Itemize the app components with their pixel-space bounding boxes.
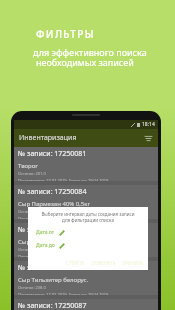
staticText: Произведено: 17.02.2019 Годен до: 29.04.… (18, 292, 109, 295)
staticText: Остаток: 35.0 (18, 209, 44, 214)
staticText: для эффективного поиска (33, 46, 147, 58)
staticText: Сыр Тильзитер белорус. (18, 276, 89, 284)
staticText: № записи: 17250087 (18, 301, 87, 310)
button[interactable]: № записи: 17250081 (14, 147, 158, 185)
staticText: ПРИНЯТЬ (122, 260, 143, 266)
staticText: 18:14 (142, 121, 155, 128)
staticText: № записи: 17250081 (18, 149, 87, 159)
button[interactable]: СТЕРЕТЬ (65, 259, 86, 267)
staticText: Сыр Пармезан 40% 0,5кг (18, 200, 91, 208)
staticText: Дата до (36, 242, 55, 249)
staticText: Выберите интервал даты создания записи д… (34, 211, 142, 223)
button[interactable]: № записи: 17250085 (14, 223, 158, 261)
button[interactable]: Дата от (36, 229, 65, 236)
staticText: Сыр Тильзитер белорус. (18, 238, 89, 246)
button[interactable]: № записи: 17250084 (14, 185, 158, 223)
staticText: Остаток: 238.0 (18, 247, 46, 252)
staticText: СТЕРЕТЬ (66, 260, 85, 266)
staticText: Инвентаризация (19, 133, 77, 143)
staticText: Остаток: 238.0 (18, 285, 46, 290)
button[interactable]: № записи: 17250087 (14, 299, 158, 310)
staticText: № записи: 17250085 (18, 225, 87, 235)
staticText: № записи: 17250086 (18, 263, 87, 273)
staticText: необходимых записей (36, 56, 134, 68)
staticText: Творог (18, 162, 38, 170)
staticText: Произведено: 17.02.2019 Годен до: 29.04.… (18, 254, 109, 257)
button[interactable]: ПРИНЯТЬ (121, 259, 144, 267)
button[interactable]: Дата до (36, 242, 65, 249)
button[interactable]: ОТМЕНИТЬ (90, 259, 117, 267)
staticText: Дата от (36, 229, 55, 236)
staticText: Произведено: 27.02.2019 Годен до: 29.04.… (18, 178, 109, 181)
button[interactable]: № записи: 17250086 (14, 261, 158, 299)
button[interactable]: Filter (142, 132, 154, 144)
staticText: № записи: 17250084 (18, 187, 87, 197)
staticText: ОТМЕНИТЬ (91, 260, 116, 266)
staticText: ФИЛЬТРЫ (36, 27, 95, 41)
staticText: Остаток: 201.0 (18, 171, 46, 176)
staticText: Произведено: 17.02.2019 Годен до: 29.04.… (18, 216, 109, 219)
